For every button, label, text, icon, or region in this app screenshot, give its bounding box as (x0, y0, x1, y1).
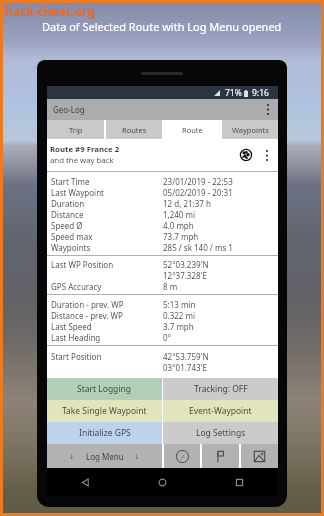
staticText: ↓ (134, 453, 140, 461)
staticText: Geo-Log (53, 104, 85, 115)
staticText: Start Time (51, 176, 163, 187)
staticText: Distance (51, 209, 163, 220)
staticText: ↓ (69, 453, 75, 461)
staticText: 23/01/2019 - 22:53 (163, 176, 233, 187)
staticText: 12°37.328'E (163, 270, 207, 281)
staticText: 8 m (163, 281, 178, 292)
staticText: Route #9 France 2 (50, 144, 120, 155)
button[interactable]: More options (256, 139, 278, 171)
button[interactable]: Log Settings (163, 422, 278, 444)
staticText: Data of Selected Route with Log Menu ope… (42, 19, 282, 34)
staticText: 3.7 mph (163, 321, 194, 332)
staticText: Start Logging (77, 383, 132, 395)
button[interactable]: Trip (47, 120, 104, 139)
staticText: 4.0 mph (163, 220, 194, 231)
staticText: 285 / sk 140 / ms 1 (163, 242, 233, 253)
staticText: Trip (69, 125, 83, 135)
staticText: Route (182, 125, 203, 135)
staticText: 71% (225, 87, 242, 99)
staticText: Take Single Waypoint (62, 405, 147, 417)
staticText: Start Position (51, 351, 163, 362)
staticText: 5:13 min (163, 299, 196, 310)
button[interactable]: Route #9 France 2 (47, 139, 278, 171)
staticText: GPS Accuracy (51, 281, 163, 292)
button[interactable]: Route (164, 120, 220, 139)
button[interactable]: Photo (241, 444, 278, 468)
staticText: 12 d, 21:37 h (163, 198, 211, 209)
staticText: Log Menu (86, 451, 124, 462)
button[interactable]: Start Logging (47, 378, 162, 400)
button[interactable]: Show on map (235, 139, 256, 171)
button[interactable]: Event-Waypoint (163, 400, 278, 422)
staticText: and the way back (50, 155, 114, 166)
staticText: 52°03.239'N (163, 259, 209, 270)
button[interactable]: Waypoint flag (202, 444, 239, 468)
button[interactable]: ↓ (47, 444, 162, 468)
staticText: Tracking: OFF (194, 383, 248, 395)
staticText: 1,240 mi (163, 209, 196, 220)
staticText: 42°53.759'N (163, 351, 209, 362)
button[interactable]: Waypoints (222, 120, 278, 139)
staticText: Waypoints (51, 242, 163, 253)
staticText: Routes (122, 125, 147, 135)
staticText: 0° (163, 332, 171, 343)
button[interactable]: Back (47, 468, 124, 496)
staticText: Last Heading (51, 332, 163, 343)
staticText: Duration - prev. WP (51, 299, 163, 310)
staticText: Waypoints (232, 125, 269, 135)
staticText: Last Speed (51, 321, 163, 332)
staticText: Speed Ø (51, 220, 163, 231)
staticText: 0.322 mi (163, 310, 196, 321)
staticText: Last WP Position (51, 259, 163, 270)
button[interactable]: Take Single Waypoint (47, 400, 162, 422)
staticText: 73.7 mph (163, 231, 199, 242)
staticText: hack-cheat.org (5, 3, 95, 19)
button[interactable]: Recent apps (201, 468, 278, 496)
staticText: Event-Waypoint (189, 405, 252, 417)
button[interactable]: More options (258, 99, 278, 120)
staticText: 05/02/2019 - 20:31 (163, 187, 233, 198)
button[interactable]: Routes (106, 120, 162, 139)
staticText: Speed max (51, 231, 163, 242)
button[interactable]: Initialize GPS (47, 422, 162, 444)
button[interactable]: Compass (164, 444, 200, 468)
staticText: 03°01.743'E (163, 362, 207, 373)
staticText: Duration (51, 198, 163, 209)
staticText: 9:16 (252, 87, 269, 99)
staticText: Log Settings (196, 427, 246, 439)
staticText: Last Waypoint (51, 187, 163, 198)
staticText: Initialize GPS (79, 427, 131, 439)
button[interactable]: Home (124, 468, 201, 496)
staticText: Distance - prev. WP (51, 310, 163, 321)
button[interactable]: Tracking: OFF (163, 378, 278, 400)
